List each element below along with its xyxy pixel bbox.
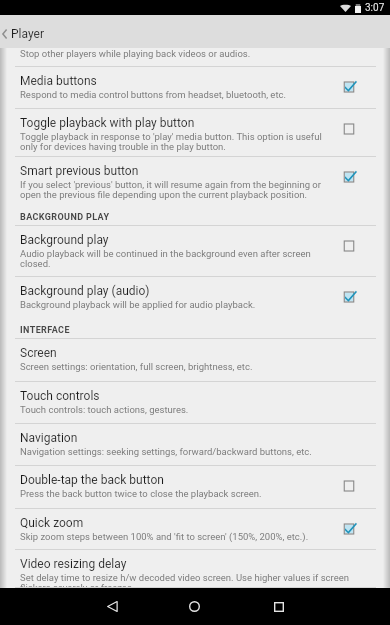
staticText: Video resizing delay (20, 557, 127, 571)
button[interactable]: Video resizing delay (0, 550, 390, 588)
staticText: Background playback will be applied for … (20, 299, 256, 310)
staticText: Background play (audio) (20, 284, 150, 298)
button[interactable]: Smart previous button (337, 165, 361, 189)
button[interactable]: Smart previous button (0, 157, 390, 205)
staticText: Screen (20, 346, 57, 360)
staticText: Navigation (20, 431, 78, 445)
button[interactable]: Recent apps (262, 590, 295, 623)
button[interactable]: Background play (0, 226, 390, 277)
staticText: 3:07 (365, 2, 385, 14)
staticText: Toggle playback with play button (20, 116, 195, 130)
staticText: Respond to media control buttons from he… (20, 89, 286, 100)
staticText: Navigation settings: seeking settings, f… (20, 446, 312, 457)
button[interactable]: Back (96, 590, 129, 623)
button[interactable]: Background play (audio) (337, 285, 361, 309)
button[interactable]: Touch controls (0, 382, 390, 424)
staticText: Player (11, 27, 44, 41)
staticText: BACKGROUND PLAY (20, 212, 110, 223)
staticText: Skip zoom steps between 100% and 'fit to… (20, 531, 309, 542)
staticText: INTERFACE (20, 325, 70, 336)
staticText: If you select 'previous' button, it will… (20, 179, 328, 201)
button[interactable]: Double-tap the back button (337, 474, 361, 498)
staticText: Set delay time to resize h/w decoded vid… (20, 572, 360, 588)
staticText: Screen settings: orientation, full scree… (20, 361, 253, 372)
button[interactable]: Quick zoom (0, 509, 390, 550)
button[interactable]: Quick zoom (337, 517, 361, 541)
staticText: Smart previous button (20, 164, 139, 178)
staticText: Quick zoom (20, 516, 84, 530)
button[interactable]: Double-tap the back button (0, 466, 390, 509)
staticText: Stop other players while playing back vi… (20, 48, 251, 59)
staticText: Audio playback will be continued in the … (20, 248, 328, 270)
staticText: Press the back button twice to close the… (20, 488, 262, 499)
staticText: Touch controls (20, 389, 100, 403)
staticText: Double-tap the back button (20, 473, 164, 487)
button[interactable]: Media buttons (337, 75, 361, 99)
button[interactable]: Toggle playback with play button (337, 117, 361, 141)
button[interactable]: Home (178, 590, 211, 623)
button[interactable]: Background play (audio) (0, 277, 390, 318)
staticText: Background play (20, 233, 109, 247)
staticText: Touch controls: touch actions, gestures. (20, 404, 189, 415)
button[interactable]: Media buttons (0, 67, 390, 109)
button[interactable]: Toggle playback with play button (0, 109, 390, 157)
button[interactable]: Screen (0, 339, 390, 382)
button[interactable]: Background play (337, 234, 361, 258)
staticText: Media buttons (20, 74, 97, 88)
button[interactable]: Up (0, 15, 390, 48)
button[interactable]: Navigation (0, 424, 390, 466)
staticText: Toggle playback in response to 'play' me… (20, 131, 328, 153)
